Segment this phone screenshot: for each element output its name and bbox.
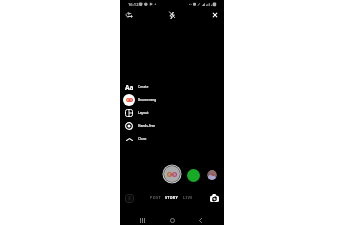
button[interactable]: Camera settings: [122, 8, 136, 22]
button[interactable]: Boomerang: [120, 93, 224, 106]
button[interactable]: Recents: [135, 213, 149, 225]
staticText: Create: [138, 85, 149, 89]
button[interactable]: Aa: [120, 80, 224, 93]
staticText: Boomerang: [138, 98, 157, 102]
button[interactable]: STORY: [165, 195, 179, 200]
button[interactable]: Gallery: [125, 194, 134, 203]
button[interactable]: Close camera: [208, 8, 222, 22]
staticText: 16:12: [128, 2, 139, 8]
button[interactable]: Back: [193, 213, 207, 225]
button[interactable]: Hands-free: [120, 119, 224, 132]
button[interactable]: Effect preview: [207, 170, 217, 180]
button[interactable]: Record boomerang: [162, 164, 182, 184]
button[interactable]: Flash off: [165, 8, 179, 22]
button[interactable]: Green effect: [187, 169, 200, 182]
staticText: Layout: [138, 111, 149, 115]
button[interactable]: POST: [150, 195, 162, 200]
button[interactable]: Switch camera: [210, 194, 219, 202]
button[interactable]: Home: [165, 213, 179, 225]
staticText: Hands-free: [138, 124, 156, 128]
button[interactable]: Close: [120, 132, 224, 145]
staticText: Close: [138, 137, 147, 141]
staticText: Aa: [125, 83, 134, 92]
button[interactable]: LIVE: [183, 195, 193, 200]
button[interactable]: Layout: [120, 106, 224, 119]
